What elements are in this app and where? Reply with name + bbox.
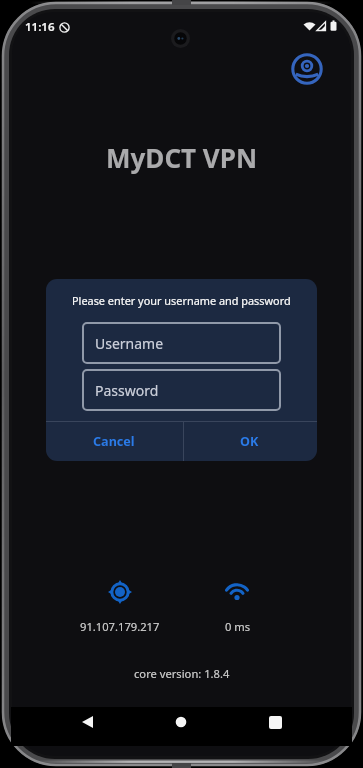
staticText: core version: 1.8.4 — [134, 666, 230, 681]
button[interactable]: Username — [82, 322, 281, 364]
staticText: Password — [95, 381, 159, 400]
button[interactable] — [76, 710, 100, 734]
button[interactable] — [263, 710, 287, 734]
staticText: Username — [95, 334, 164, 353]
staticText: OK — [240, 433, 259, 450]
button[interactable]: OK — [182, 422, 317, 461]
staticText: Please enter your username and password — [72, 293, 291, 308]
staticText: Cancel — [93, 433, 135, 450]
button[interactable]: Password — [82, 369, 281, 411]
staticText: 11:16 — [25, 19, 55, 35]
staticText: 91.107.179.217 — [80, 619, 160, 634]
button[interactable] — [169, 710, 193, 734]
button[interactable]: Cancel — [46, 422, 182, 461]
staticText: MyDCT VPN — [106, 140, 258, 175]
button[interactable] — [290, 52, 326, 88]
staticText: 0 ms — [225, 619, 251, 634]
